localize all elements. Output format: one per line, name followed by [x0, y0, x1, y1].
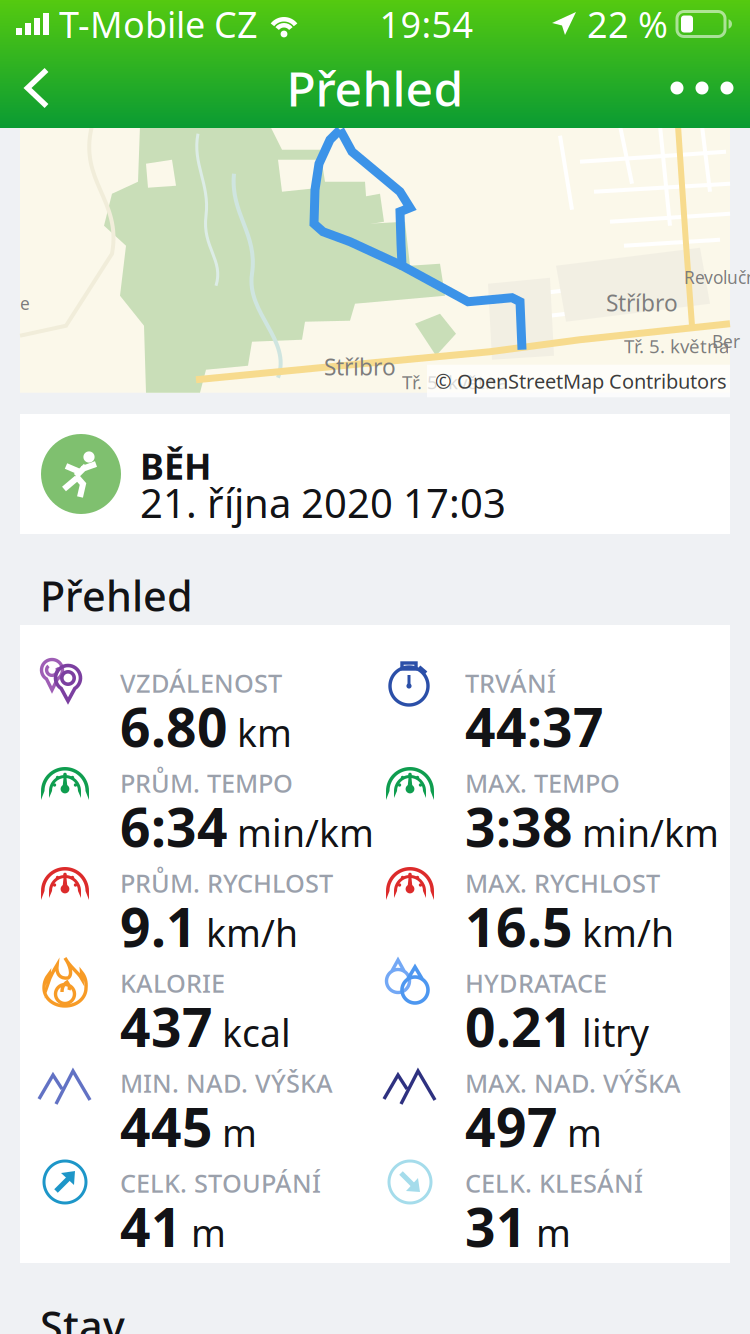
- staticText: CELK. STOUPÁNÍ: [120, 1166, 321, 1200]
- staticText: MAX. RYCHLOST: [465, 866, 660, 900]
- staticText: e: [20, 292, 30, 315]
- staticText: VZDÁLENOST: [120, 666, 282, 700]
- staticText: Revoluční: [684, 266, 750, 289]
- staticText: m: [567, 1108, 602, 1157]
- button[interactable]: More options: [654, 48, 750, 128]
- staticText: km/h: [582, 908, 674, 957]
- staticText: kcal: [222, 1008, 291, 1057]
- staticText: min/km: [582, 808, 719, 857]
- staticText: Přehled: [40, 568, 193, 623]
- staticText: 19:54: [379, 0, 473, 48]
- staticText: litry: [582, 1008, 649, 1057]
- staticText: 44:37: [465, 691, 604, 762]
- staticText: CELK. KLESÁNÍ: [465, 1166, 643, 1200]
- staticText: 6.80: [120, 691, 228, 762]
- staticText: Tř. 5. května: [624, 334, 729, 358]
- staticText: PRŮM. TEMPO: [120, 766, 293, 800]
- staticText: km/h: [206, 908, 298, 957]
- staticText: MAX. TEMPO: [465, 766, 620, 800]
- staticText: 497: [465, 1091, 558, 1162]
- staticText: Stříbro: [606, 288, 678, 318]
- staticText: 21. října 2020 17:03: [140, 476, 506, 529]
- staticText: 6:34: [120, 791, 228, 862]
- button[interactable]: BĚH: [20, 414, 730, 534]
- staticText: min/km: [237, 808, 374, 857]
- staticText: MIN. NAD. VÝŠKA: [120, 1066, 333, 1100]
- staticText: 31: [465, 1191, 527, 1262]
- staticText: Ber: [712, 330, 740, 353]
- staticText: m: [191, 1208, 226, 1257]
- staticText: 9.1: [120, 891, 197, 962]
- staticText: km: [237, 708, 292, 757]
- staticText: m: [536, 1208, 571, 1257]
- staticText: 3:38: [465, 791, 573, 862]
- staticText: HYDRATACE: [465, 966, 607, 1000]
- staticText: 445: [120, 1091, 213, 1162]
- staticText: © OpenStreetMap Contributors: [435, 368, 727, 394]
- staticText: Přehled: [286, 56, 463, 120]
- staticText: Stav: [40, 1298, 125, 1334]
- staticText: Tř. 5. května: [402, 370, 507, 394]
- staticText: T-Mobile CZ: [59, 0, 258, 48]
- staticText: 16.5: [465, 891, 573, 962]
- staticText: PRŮM. RYCHLOST: [120, 866, 333, 900]
- staticText: 41: [120, 1191, 182, 1262]
- staticText: KALORIE: [120, 966, 225, 1000]
- staticText: TRVÁNÍ: [465, 666, 556, 700]
- staticText: MAX. NAD. VÝŠKA: [465, 1066, 681, 1100]
- staticText: 0.21: [465, 991, 573, 1062]
- staticText: m: [222, 1108, 257, 1157]
- staticText: Stříbro: [324, 352, 396, 382]
- staticText: 22 %: [587, 0, 668, 48]
- staticText: BĚH: [140, 442, 212, 490]
- staticText: 437: [120, 991, 213, 1062]
- button[interactable]: Back: [0, 48, 74, 128]
